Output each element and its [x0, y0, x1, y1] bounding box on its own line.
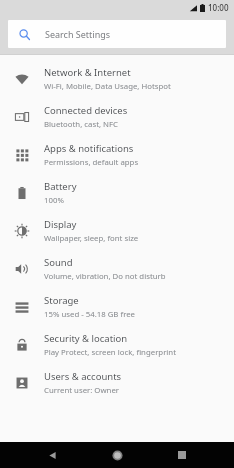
staticText: Play Protect, screen lock, fingerprint — [44, 347, 177, 358]
staticText: Storage — [44, 294, 79, 307]
button[interactable]: Connected devices — [0, 98, 234, 136]
staticText: Wallpaper, sleep, font size — [44, 233, 139, 244]
staticText: Permissions, default apps — [44, 157, 139, 168]
button[interactable]: Battery — [0, 174, 234, 212]
staticText: Battery — [44, 180, 77, 193]
button[interactable]: Back — [39, 442, 65, 468]
staticText: Security & location — [44, 332, 128, 345]
button[interactable]: Security & location — [0, 326, 234, 364]
staticText: Users & accounts — [44, 370, 122, 383]
button[interactable]: Display — [0, 212, 234, 250]
staticText: Bluetooth, cast, NFC — [44, 119, 118, 130]
button[interactable]: Users & accounts — [0, 364, 234, 402]
button[interactable]: Sound — [0, 250, 234, 288]
staticText: 10:00 — [208, 2, 229, 13]
button[interactable]: Recent apps — [169, 442, 195, 468]
staticText: Wi-Fi, Mobile, Data Usage, Hotspot — [44, 81, 171, 92]
staticText: Volume, vibration, Do not disturb — [44, 271, 166, 282]
staticText: Network & Internet — [44, 66, 131, 79]
staticText: Search Settings — [45, 28, 111, 40]
staticText: Sound — [44, 256, 73, 269]
staticText: Apps & notifications — [44, 142, 134, 155]
staticText: 15% used - 54.18 GB free — [44, 309, 136, 320]
button[interactable]: Search Settings — [8, 20, 226, 48]
staticText: 100% — [44, 195, 64, 206]
button[interactable]: Network & Internet — [0, 60, 234, 98]
staticText: Current user: Owner — [44, 385, 120, 396]
button[interactable]: Apps & notifications — [0, 136, 234, 174]
staticText: Connected devices — [44, 104, 128, 117]
button[interactable]: Storage — [0, 288, 234, 326]
button[interactable]: Home — [104, 442, 130, 468]
staticText: Display — [44, 218, 77, 231]
